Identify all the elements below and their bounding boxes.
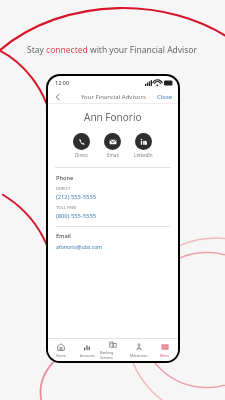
staticText: (800) 555-5555 — [56, 212, 97, 220]
staticText: Phone — [56, 174, 74, 182]
staticText: (212) 555-5555 — [56, 193, 97, 201]
button[interactable]: Home — [48, 339, 74, 361]
staticText: afonorio@ubs.com — [56, 243, 103, 250]
staticText: Ann Fonorio — [84, 110, 142, 124]
staticText: Email — [56, 232, 71, 240]
staticText: LinkedIn — [134, 152, 153, 158]
staticText: Home — [56, 353, 66, 358]
staticText: 12:00 — [55, 79, 70, 86]
staticText: Your Financial Advisors — [81, 93, 146, 101]
button[interactable]: Milestones — [126, 339, 152, 361]
staticText: Banking Services — [100, 350, 126, 360]
staticText: Milestones — [130, 353, 148, 358]
staticText: Close — [157, 93, 173, 101]
button[interactable]: Close — [157, 93, 173, 101]
staticText: DIRECT — [56, 186, 71, 192]
button[interactable]: Back — [52, 91, 64, 103]
button[interactable]: (212) 555-5555 — [56, 193, 97, 201]
button[interactable]: afonorio@ubs.com — [56, 243, 103, 250]
staticText: Accounts — [80, 353, 95, 358]
button[interactable]: Accounts — [74, 339, 100, 361]
button[interactable]: Email — [102, 133, 123, 158]
staticText: Menu — [160, 353, 170, 358]
staticText: Direct — [75, 152, 88, 158]
button[interactable]: LinkedIn — [132, 133, 155, 158]
staticText: TOLL FREE — [56, 205, 77, 211]
staticText: Email — [107, 152, 119, 158]
staticText: Stay connected with your Financial Advis… — [27, 44, 198, 56]
button[interactable]: Direct — [71, 133, 92, 158]
button[interactable]: (800) 555-5555 — [56, 212, 97, 220]
button[interactable]: Banking Services — [100, 339, 126, 361]
button[interactable]: Menu — [152, 339, 178, 361]
